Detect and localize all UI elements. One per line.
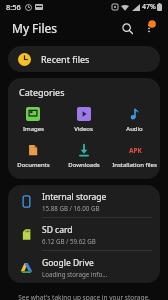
button[interactable]: Downloads xyxy=(58,141,109,171)
button[interactable]: SD card xyxy=(8,218,160,250)
button[interactable]: Recent files xyxy=(8,46,160,72)
staticText: Categories xyxy=(19,86,65,98)
staticText: Loading storage info... xyxy=(42,270,108,278)
staticText: Recent files xyxy=(41,53,90,65)
button[interactable]: Search xyxy=(116,17,138,39)
staticText: Google Drive xyxy=(42,257,94,269)
button[interactable]: More options xyxy=(138,17,160,39)
button[interactable]: APK xyxy=(109,141,160,171)
staticText: Installation files xyxy=(112,161,157,169)
staticText: Videos xyxy=(74,125,93,133)
staticText: See what's taking up space in your stora… xyxy=(0,293,168,300)
button[interactable]: Videos xyxy=(58,105,109,135)
staticText: Images xyxy=(23,125,44,133)
staticText: APK xyxy=(129,146,142,155)
button[interactable]: Documents xyxy=(8,141,58,171)
button[interactable]: Images xyxy=(8,105,58,135)
staticText: Documents xyxy=(17,161,50,169)
staticText: 6.12 GB / 59.62 GB xyxy=(42,237,96,245)
staticText: My Files xyxy=(12,20,58,36)
staticText: 47% xyxy=(142,2,156,12)
staticText: 15.88 GB / 16.00 GB xyxy=(42,204,100,212)
button[interactable]: Audio xyxy=(109,105,160,135)
staticText: Downloads xyxy=(68,161,100,169)
button[interactable]: Google Drive xyxy=(8,251,160,283)
button[interactable]: Internal storage xyxy=(8,185,160,217)
staticText: SD card xyxy=(42,224,73,236)
staticText: 8:56 xyxy=(6,2,21,12)
staticText: Internal storage xyxy=(42,191,107,203)
staticText: Audio xyxy=(126,125,143,133)
